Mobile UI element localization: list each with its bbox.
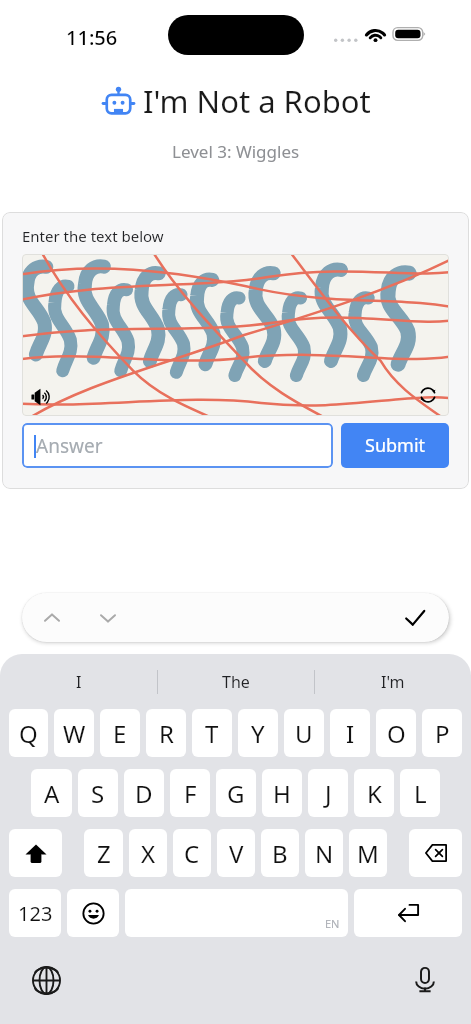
button[interactable]: Emoji xyxy=(67,889,119,937)
button[interactable]: Enter xyxy=(354,889,462,937)
staticText: 11:56 xyxy=(66,24,118,51)
button[interactable]: I'm xyxy=(315,654,471,709)
button[interactable]: J xyxy=(308,769,348,817)
button[interactable]: Shift xyxy=(9,829,62,877)
button[interactable]: Space xyxy=(125,889,348,937)
staticText: 123 xyxy=(18,900,53,927)
button[interactable]: Z xyxy=(84,829,123,877)
button[interactable]: L xyxy=(400,769,440,817)
button[interactable]: Previous field xyxy=(32,598,72,638)
button[interactable]: X xyxy=(129,829,167,877)
staticText: F xyxy=(184,777,197,810)
staticText: T xyxy=(205,717,219,750)
button[interactable]: Done xyxy=(395,598,435,638)
button[interactable]: U xyxy=(284,709,324,757)
staticText: The xyxy=(222,671,250,693)
button[interactable]: Play audio xyxy=(26,382,56,412)
button[interactable]: Next field xyxy=(88,598,128,638)
staticText: M xyxy=(357,837,379,870)
button[interactable]: I xyxy=(0,654,157,709)
button[interactable]: I xyxy=(330,709,370,757)
button[interactable]: F xyxy=(170,769,210,817)
staticText: EN xyxy=(325,916,340,931)
button[interactable]: Y xyxy=(238,709,278,757)
button[interactable]: D xyxy=(124,769,164,817)
staticText: J xyxy=(325,777,332,810)
staticText: Answer xyxy=(36,433,103,459)
staticText: D xyxy=(135,777,153,810)
button[interactable]: K xyxy=(354,769,394,817)
button[interactable]: W xyxy=(54,709,94,757)
staticText: I'm xyxy=(381,671,405,693)
staticText: Q xyxy=(19,717,38,750)
staticText: S xyxy=(91,777,105,810)
button[interactable]: Voice input xyxy=(405,960,445,1000)
staticText: Level 3: Wiggles xyxy=(172,140,300,163)
staticText: I xyxy=(76,671,82,693)
button[interactable]: E xyxy=(100,709,140,757)
staticText: E xyxy=(113,717,127,750)
staticText: B xyxy=(272,837,288,870)
button[interactable]: R xyxy=(146,709,186,757)
staticText: Z xyxy=(97,837,111,870)
staticText: V xyxy=(229,837,244,870)
button[interactable]: The xyxy=(158,654,314,709)
staticText: G xyxy=(227,777,245,810)
button[interactable]: A xyxy=(31,769,72,817)
staticText: X xyxy=(141,837,156,870)
button[interactable]: V xyxy=(217,829,255,877)
staticText: I'm Not a Robot xyxy=(143,80,371,122)
button[interactable]: Refresh captcha xyxy=(413,380,443,410)
staticText: P xyxy=(435,717,450,750)
staticText: N xyxy=(315,837,334,870)
button[interactable]: 123 xyxy=(9,889,61,937)
staticText: K xyxy=(367,777,382,810)
button[interactable]: S xyxy=(78,769,118,817)
staticText: O xyxy=(387,717,406,750)
button[interactable]: M xyxy=(349,829,387,877)
staticText: Y xyxy=(251,717,265,750)
button[interactable]: Backspace xyxy=(409,829,462,877)
button[interactable]: Answer xyxy=(22,423,333,468)
button[interactable]: G xyxy=(216,769,256,817)
button[interactable]: Submit xyxy=(341,423,449,468)
staticText: U xyxy=(295,717,313,750)
staticText: L xyxy=(414,777,427,810)
button[interactable]: N xyxy=(305,829,343,877)
button[interactable]: B xyxy=(261,829,299,877)
staticText: H xyxy=(273,777,291,810)
button[interactable]: Q xyxy=(9,709,48,757)
staticText: C xyxy=(184,837,200,870)
button[interactable]: Change keyboard xyxy=(26,960,66,1000)
staticText: W xyxy=(63,717,86,750)
button[interactable]: T xyxy=(192,709,232,757)
button[interactable]: O xyxy=(376,709,416,757)
staticText: Enter the text below xyxy=(22,226,164,246)
staticText: A xyxy=(44,777,60,810)
button[interactable]: H xyxy=(262,769,302,817)
staticText: R xyxy=(159,717,174,750)
button[interactable]: P xyxy=(422,709,462,757)
staticText: Submit xyxy=(365,433,426,458)
staticText: I xyxy=(346,717,355,750)
button[interactable]: C xyxy=(173,829,211,877)
